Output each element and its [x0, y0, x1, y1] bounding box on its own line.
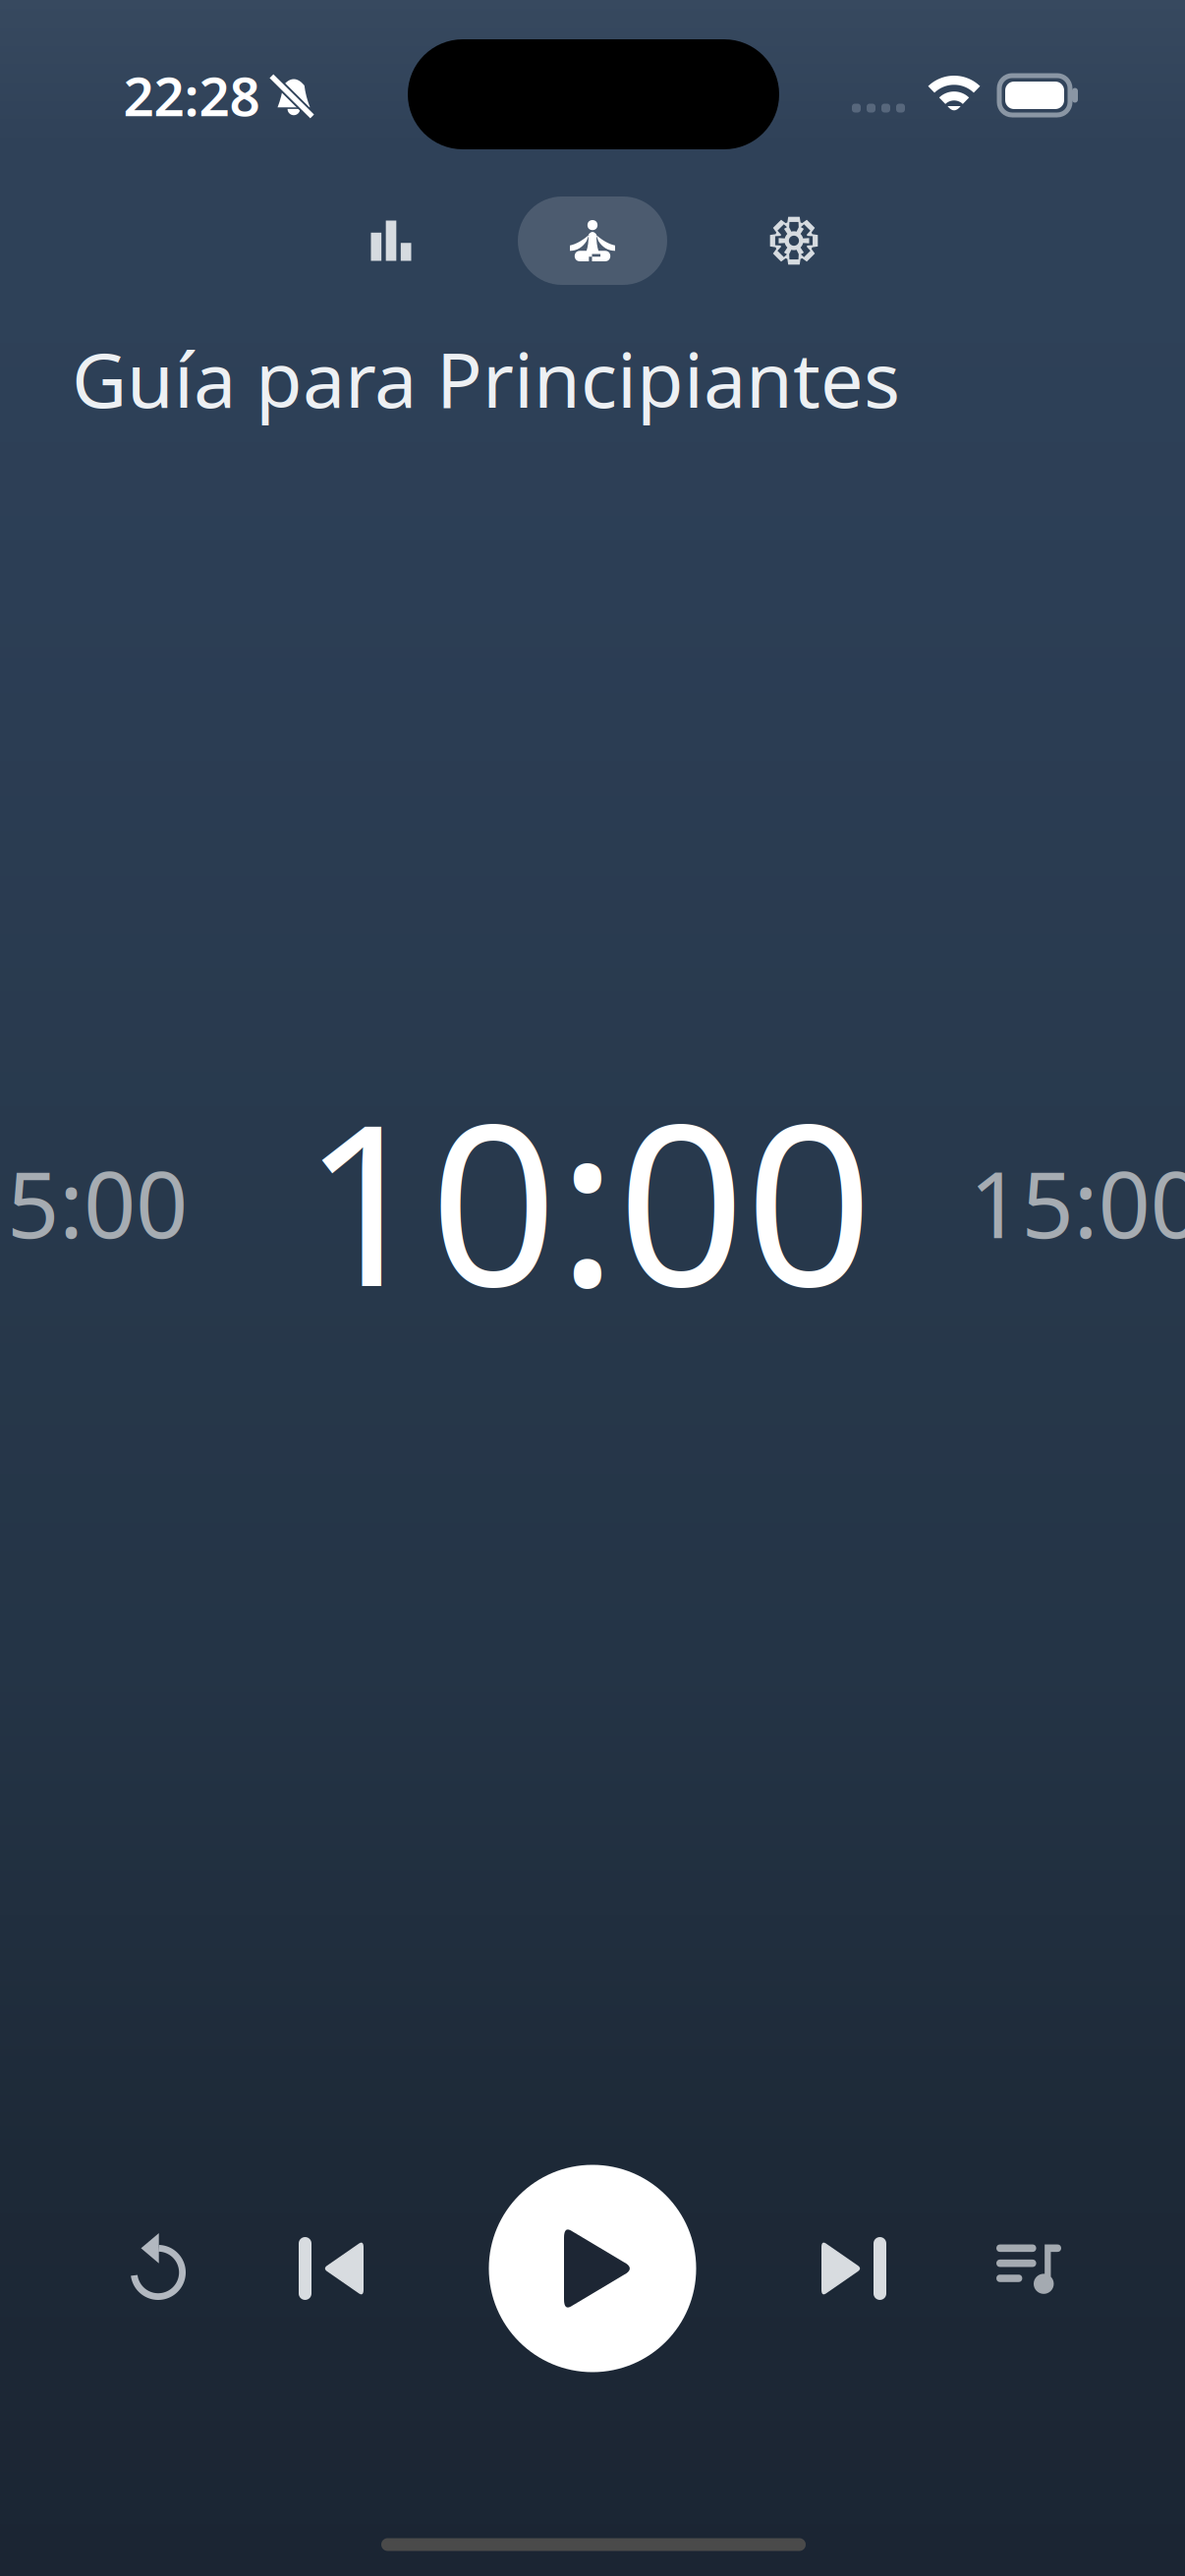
staticText: 5:00: [7, 1142, 188, 1263]
button[interactable]: Estadísticas: [317, 196, 465, 285]
staticText: 10:00: [302, 1052, 873, 1347]
staticText: 22:28: [123, 60, 260, 131]
staticText: Guía para Principiantes: [72, 328, 900, 429]
button[interactable]: Lista de reproducción: [955, 2195, 1102, 2342]
button[interactable]: Anterior: [257, 2195, 405, 2342]
button[interactable]: Reproducir: [480, 2156, 705, 2381]
button[interactable]: Meditar: [518, 196, 667, 285]
staticText: 15:00: [969, 1142, 1185, 1263]
button[interactable]: Siguiente: [780, 2195, 928, 2342]
button[interactable]: Reiniciar: [85, 2193, 232, 2340]
button[interactable]: Ajustes: [720, 196, 868, 285]
